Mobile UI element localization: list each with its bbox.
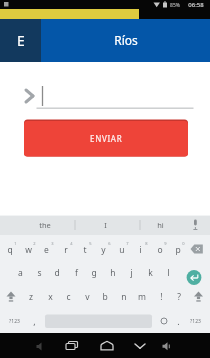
button[interactable]: ? bbox=[170, 288, 188, 305]
staticText: w bbox=[25, 244, 32, 256]
button[interactable]: ENVIAR bbox=[24, 120, 188, 157]
button[interactable]: u bbox=[112, 241, 131, 258]
button[interactable] bbox=[191, 240, 210, 259]
staticText: v bbox=[85, 291, 90, 303]
button[interactable]: q bbox=[0, 241, 19, 258]
staticText: i bbox=[139, 244, 142, 256]
button[interactable]: g bbox=[85, 264, 103, 281]
staticText: 0 bbox=[182, 241, 185, 246]
button[interactable]: d bbox=[48, 264, 66, 281]
staticText: y bbox=[101, 244, 106, 256]
staticText: ENVIAR bbox=[90, 133, 123, 144]
staticText: q bbox=[7, 244, 13, 256]
button[interactable] bbox=[62, 336, 82, 356]
button[interactable]: c bbox=[59, 288, 77, 305]
button[interactable]: m bbox=[133, 288, 151, 305]
staticText: z bbox=[29, 291, 33, 303]
button[interactable]: k bbox=[141, 264, 159, 281]
button[interactable]: z bbox=[22, 288, 40, 305]
staticText: 06:58 bbox=[188, 1, 204, 9]
staticText: I bbox=[104, 220, 107, 230]
staticText: . bbox=[177, 315, 180, 327]
button[interactable]: . bbox=[173, 312, 183, 330]
button[interactable]: p bbox=[168, 241, 187, 258]
staticText: 8 bbox=[145, 241, 148, 246]
staticText: ?123 bbox=[190, 318, 201, 325]
staticText: 85% bbox=[170, 2, 180, 9]
button[interactable]: e bbox=[37, 241, 56, 258]
staticText: 7 bbox=[126, 241, 129, 246]
button[interactable]: v bbox=[78, 288, 96, 305]
staticText: c bbox=[66, 291, 71, 303]
button[interactable] bbox=[158, 314, 170, 328]
button[interactable]: ?123 bbox=[5, 316, 23, 326]
staticText: 2 bbox=[33, 241, 36, 246]
button[interactable]: n bbox=[115, 288, 133, 305]
button[interactable]: E bbox=[0, 19, 41, 62]
staticText: e bbox=[44, 244, 49, 256]
staticText: p bbox=[175, 244, 181, 256]
button[interactable]: o bbox=[150, 241, 169, 258]
staticText: ?123 bbox=[9, 318, 20, 325]
staticText: s bbox=[37, 267, 42, 279]
button[interactable]: hi bbox=[140, 217, 180, 232]
staticText: j bbox=[130, 267, 133, 279]
button[interactable]: a bbox=[11, 264, 29, 281]
button[interactable]: l bbox=[159, 264, 177, 281]
button[interactable] bbox=[186, 269, 202, 285]
button[interactable]: h bbox=[104, 264, 122, 281]
button[interactable]: y bbox=[94, 241, 113, 258]
staticText: a bbox=[18, 267, 23, 279]
staticText: 3 bbox=[51, 241, 54, 246]
staticText: d bbox=[54, 267, 60, 279]
button[interactable]: s bbox=[30, 264, 48, 281]
button[interactable]: the bbox=[25, 217, 65, 232]
staticText: 6 bbox=[108, 241, 111, 246]
button[interactable]: f bbox=[67, 264, 85, 281]
staticText: x bbox=[48, 291, 53, 303]
staticText: n bbox=[121, 291, 127, 303]
button[interactable] bbox=[190, 287, 208, 305]
staticText: ! bbox=[160, 291, 163, 303]
staticText: the bbox=[39, 220, 51, 230]
button[interactable]: I bbox=[85, 217, 125, 232]
button[interactable]: t bbox=[75, 241, 94, 258]
staticText: 5 bbox=[89, 241, 92, 246]
staticText: hi bbox=[157, 220, 164, 230]
button[interactable]: ! bbox=[152, 288, 170, 305]
staticText: , bbox=[33, 315, 36, 327]
button[interactable]: x bbox=[41, 288, 59, 305]
button[interactable]: , bbox=[29, 312, 39, 330]
button[interactable]: w bbox=[19, 241, 38, 258]
button[interactable] bbox=[2, 287, 20, 305]
staticText: l bbox=[167, 267, 170, 279]
button[interactable] bbox=[45, 314, 152, 328]
staticText: m bbox=[138, 291, 146, 303]
button[interactable] bbox=[22, 82, 194, 108]
button[interactable]: r bbox=[56, 241, 75, 258]
staticText: ? bbox=[177, 291, 181, 303]
staticText: E bbox=[17, 31, 25, 50]
staticText: o bbox=[157, 244, 163, 256]
button[interactable] bbox=[188, 216, 204, 234]
button[interactable]: ?123 bbox=[186, 316, 204, 326]
staticText: Ríos bbox=[114, 32, 138, 48]
staticText: 9 bbox=[164, 241, 167, 246]
staticText: g bbox=[91, 267, 97, 279]
button[interactable]: i bbox=[131, 241, 150, 258]
button[interactable] bbox=[97, 336, 117, 356]
button[interactable] bbox=[130, 336, 150, 356]
staticText: 4 bbox=[70, 241, 73, 246]
staticText: h bbox=[110, 267, 116, 279]
staticText: 1 bbox=[14, 241, 17, 246]
button[interactable]: b bbox=[96, 288, 114, 305]
staticText: b bbox=[102, 291, 108, 303]
staticText: u bbox=[119, 244, 125, 256]
button[interactable]: j bbox=[122, 264, 140, 281]
staticText: t bbox=[83, 244, 87, 256]
staticText: k bbox=[148, 267, 153, 279]
staticText: r bbox=[64, 244, 68, 256]
staticText: f bbox=[75, 267, 78, 279]
